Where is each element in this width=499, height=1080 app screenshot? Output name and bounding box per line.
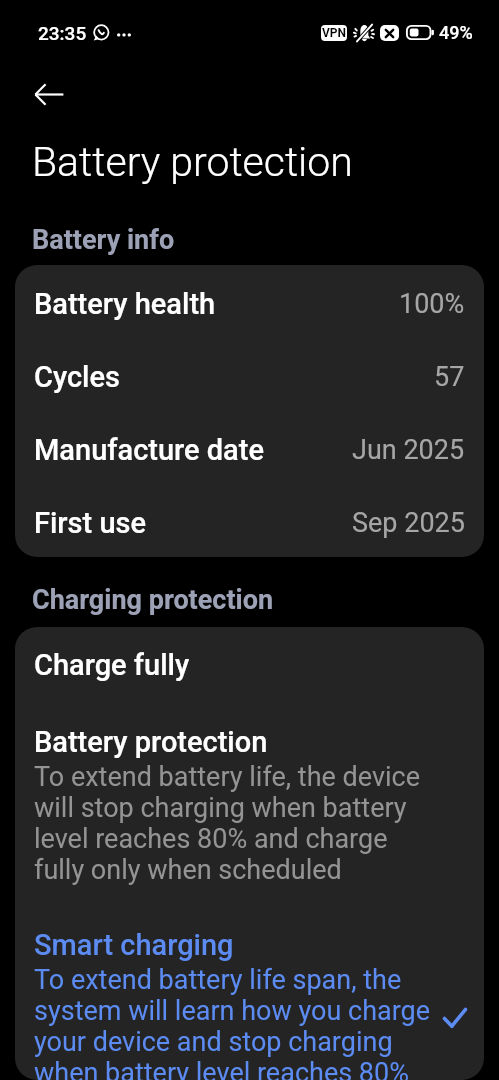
staticText: Battery protection xyxy=(32,138,353,186)
button[interactable]: First use xyxy=(15,484,484,557)
button[interactable]: Smart charging xyxy=(15,895,484,1080)
staticText: Battery info xyxy=(32,224,175,256)
staticText: Jun 2025 xyxy=(352,434,465,466)
staticText: 57 xyxy=(434,361,465,393)
button[interactable]: Selected xyxy=(440,1003,470,1033)
staticText: To extend battery life, the device will … xyxy=(34,761,436,885)
button[interactable]: Manufacture date xyxy=(15,411,484,484)
staticText: Battery protection xyxy=(34,719,268,761)
staticText: Manufacture date xyxy=(34,433,264,467)
staticText: Smart charging xyxy=(34,922,234,964)
staticText: Charge fully xyxy=(34,648,190,682)
staticText: Charging protection xyxy=(32,584,274,616)
staticText: First use xyxy=(34,506,146,540)
button[interactable]: Battery health xyxy=(15,265,484,338)
staticText: Battery health xyxy=(34,287,216,321)
staticText: Cycles xyxy=(34,360,120,394)
staticText: VPN xyxy=(322,26,347,40)
button[interactable]: Charge fully xyxy=(15,627,484,703)
button[interactable]: Battery protection xyxy=(15,703,484,895)
staticText: 100% xyxy=(399,288,465,320)
button[interactable]: Cycles xyxy=(15,338,484,411)
staticText: To extend battery life span, the system … xyxy=(34,964,436,1080)
staticText: Sep 2025 xyxy=(352,507,465,539)
staticText: 49% xyxy=(439,22,473,43)
button[interactable]: Back xyxy=(34,66,108,122)
staticText: 23:35 xyxy=(38,22,87,44)
